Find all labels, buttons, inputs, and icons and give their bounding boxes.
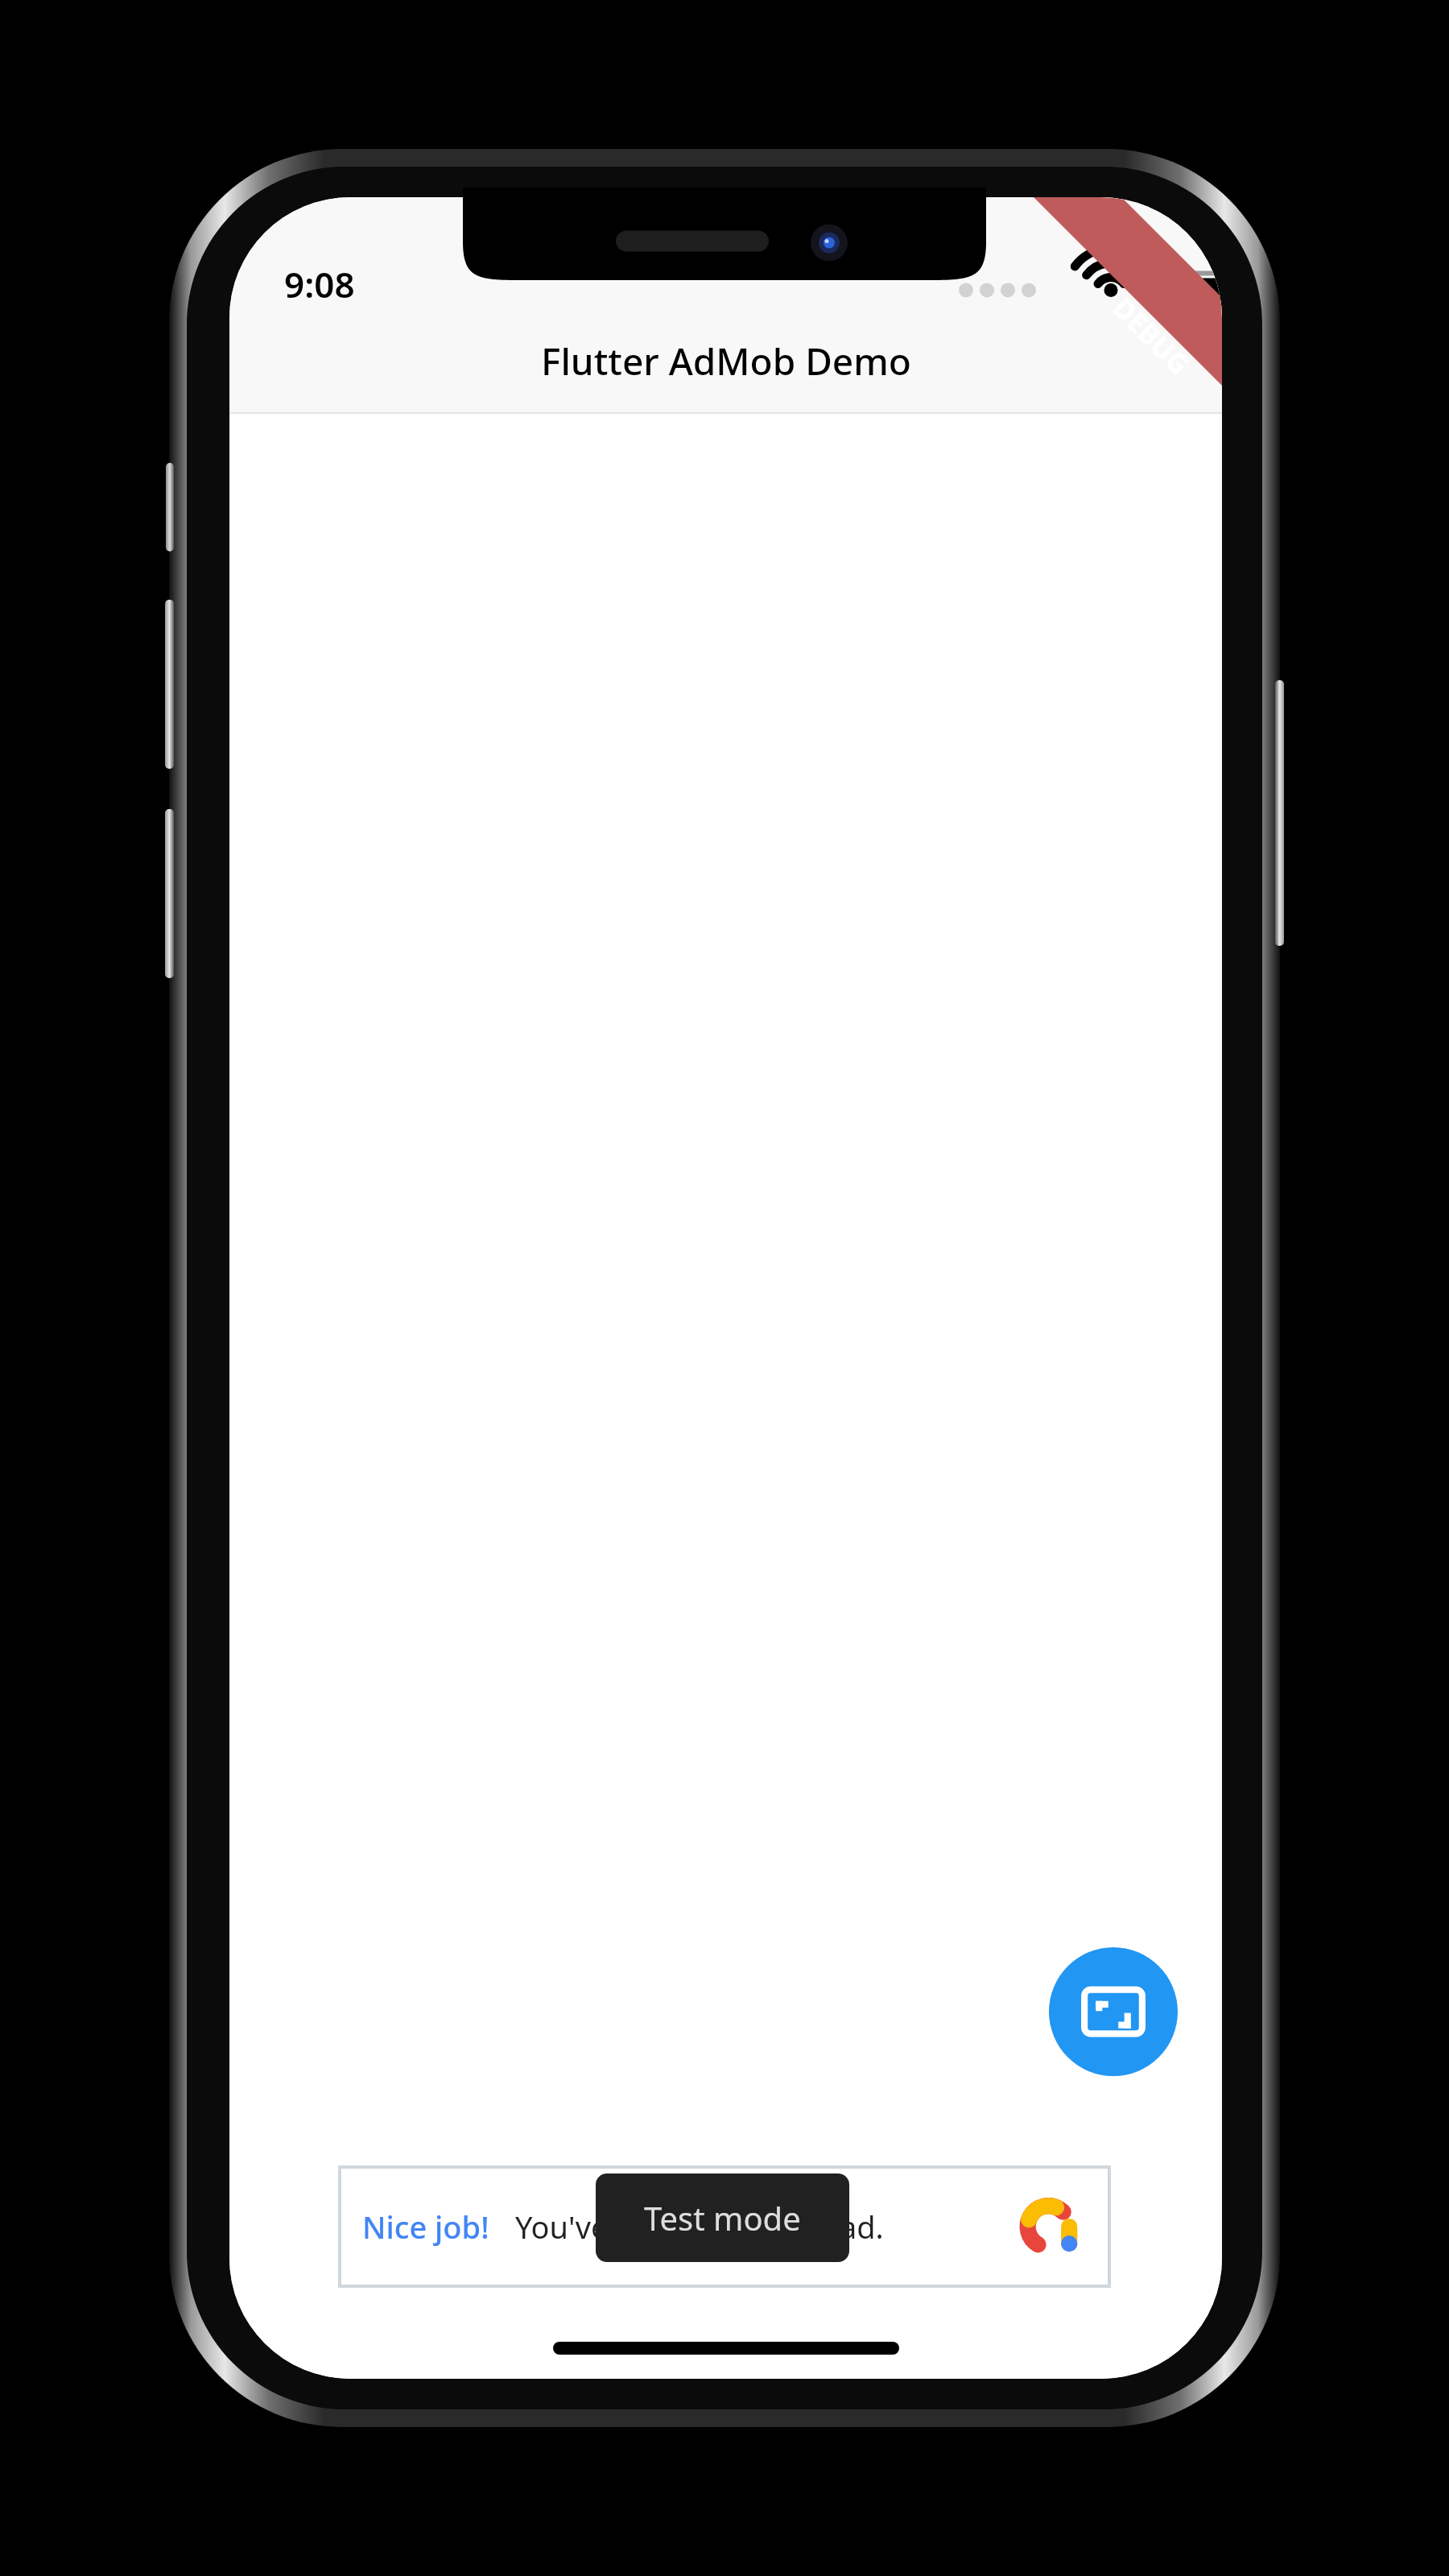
staticText: You've just seen a test ad. [515, 2206, 884, 2248]
staticText: Test mode [644, 2196, 801, 2240]
staticText: Nice job! [362, 2206, 489, 2248]
staticText: DEBUG [1105, 289, 1198, 382]
button[interactable]: Test mode [596, 2173, 849, 2262]
button[interactable]: Show interstitial ad [1049, 1947, 1178, 2076]
staticText: 9:08 [284, 260, 355, 308]
button[interactable]: Nice job! [340, 2167, 1109, 2286]
staticText: Flutter AdMob Demo [541, 336, 911, 386]
